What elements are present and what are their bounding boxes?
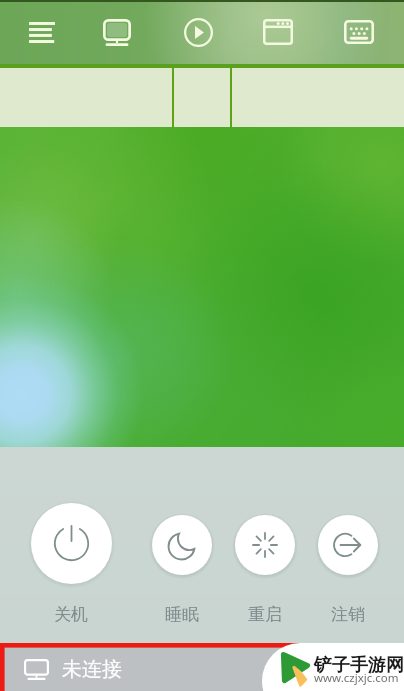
- staticText: 注销: [331, 604, 365, 625]
- button[interactable]: Monitor: [24, 648, 404, 691]
- other: Monitor: [24, 659, 49, 680]
- button[interactable]: Windows: [241, 0, 315, 64]
- button[interactable]: 关机: [25, 499, 117, 625]
- staticText: 未连接: [62, 657, 122, 682]
- button[interactable]: 重启: [219, 511, 311, 625]
- button[interactable]: Play: [161, 0, 235, 64]
- button[interactable]: Desktop: [80, 0, 154, 64]
- button[interactable]: 睡眠: [136, 511, 228, 625]
- staticText: www.czjxjc.com: [314, 670, 399, 686]
- staticText: 铲子手游网: [314, 654, 404, 677]
- staticText: 重启: [248, 604, 282, 625]
- staticText: 关机: [54, 604, 88, 625]
- staticText: 睡眠: [165, 604, 199, 625]
- button[interactable]: Keyboard: [322, 0, 396, 64]
- button[interactable]: Menu: [5, 0, 79, 64]
- button[interactable]: 注销: [302, 511, 394, 625]
